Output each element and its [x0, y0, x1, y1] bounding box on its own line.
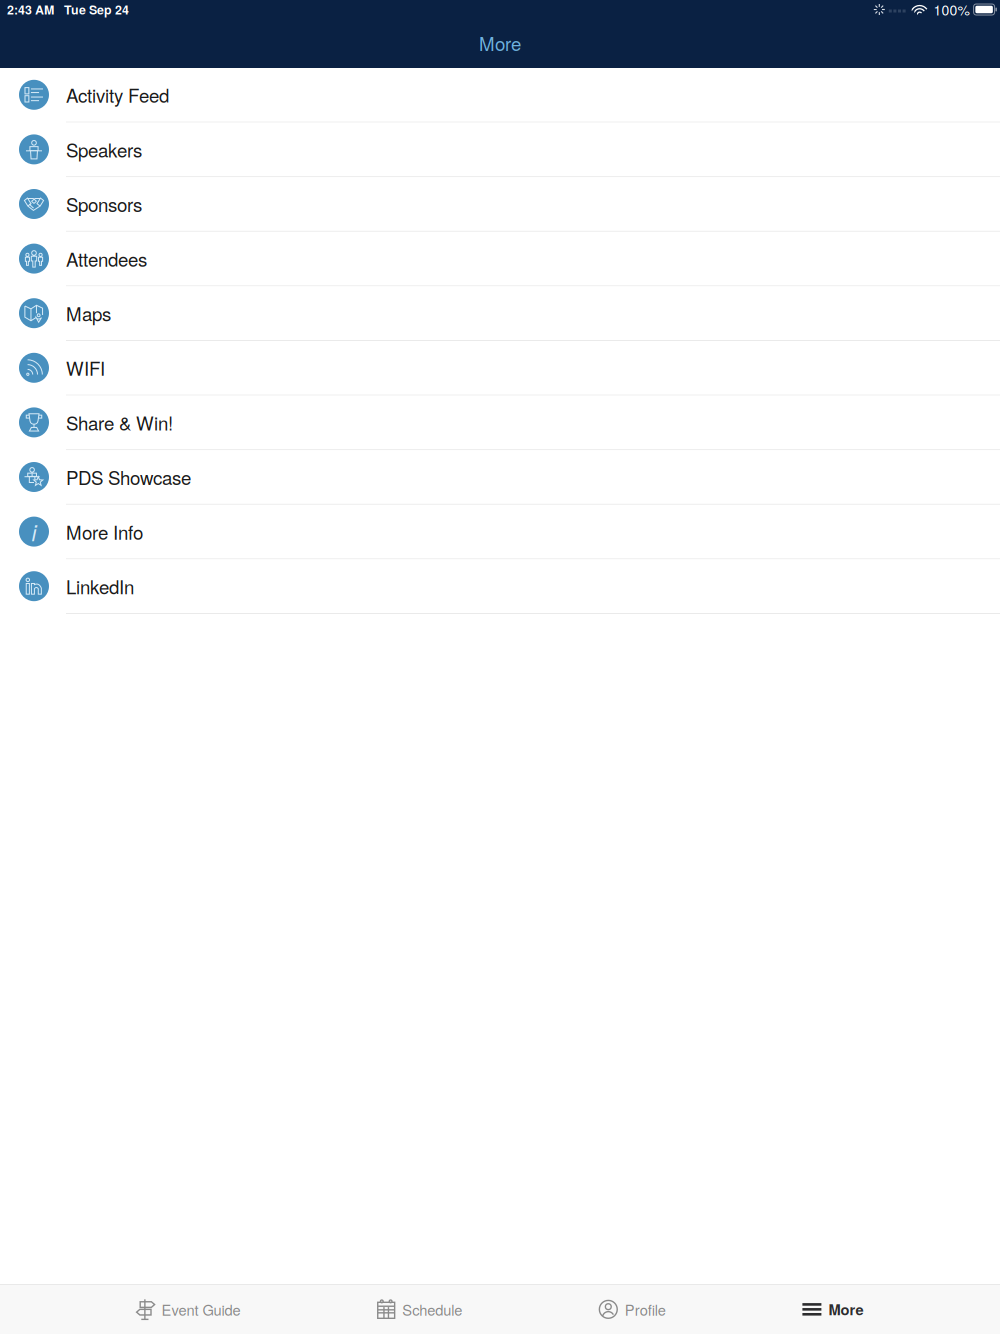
button[interactable]: i [0, 505, 1000, 559]
staticText: Profile [625, 1299, 666, 1320]
staticText: Activity Feed [66, 81, 169, 108]
button[interactable]: Activity Feed [0, 68, 1000, 123]
staticText: Sponsors [66, 191, 142, 217]
staticText: Schedule [402, 1299, 462, 1320]
staticText: Tue Sep 24 [64, 1, 129, 18]
staticText: 2:43 AM [7, 1, 54, 18]
button[interactable]: Profile [599, 1284, 666, 1334]
staticText: More [479, 30, 521, 56]
staticText: Attendees [66, 245, 147, 272]
staticText: Speakers [66, 136, 142, 163]
staticText: i [31, 516, 36, 548]
button[interactable]: Attendees [0, 232, 1000, 286]
button[interactable]: Schedule [377, 1284, 462, 1334]
button[interactable]: Sponsors [0, 177, 1000, 232]
button[interactable]: WIFI [0, 341, 1000, 396]
button[interactable]: Speakers [0, 123, 1000, 177]
staticText: 100% [934, 0, 970, 19]
staticText: More Info [66, 518, 143, 545]
button[interactable]: Event Guide [137, 1284, 241, 1334]
staticText: Maps [66, 300, 111, 326]
staticText: More [828, 1299, 863, 1320]
staticText: PDS Showcase [66, 464, 191, 490]
button[interactable]: Maps [0, 286, 1000, 341]
staticText: LinkedIn [66, 573, 134, 599]
button[interactable]: LinkedIn [0, 559, 1000, 614]
button[interactable]: More [802, 1284, 863, 1334]
staticText: Event Guide [162, 1299, 241, 1320]
button[interactable]: Share & Win! [0, 396, 1000, 450]
button[interactable]: PDS Showcase [0, 450, 1000, 505]
staticText: Share & Win! [66, 409, 173, 436]
staticText: WIFI [66, 354, 105, 381]
